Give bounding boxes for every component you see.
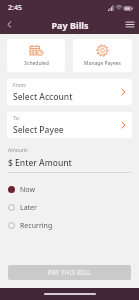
staticText: Recurring (20, 221, 53, 231)
staticText: To: (13, 115, 20, 122)
staticText: $ Enter Amount (8, 157, 72, 169)
staticText: From: (13, 82, 27, 89)
button[interactable]: Amount: (8, 147, 131, 173)
button[interactable]: To: (7, 112, 132, 138)
button[interactable]: Now (8, 184, 131, 195)
staticText: Pay Bills (51, 19, 89, 31)
staticText: Select Payee (13, 124, 64, 136)
button[interactable]: Recurring (8, 220, 131, 231)
staticText: Amount: (8, 147, 29, 154)
button[interactable]: Scheduled (7, 39, 65, 72)
button[interactable]: Menu (120, 15, 139, 34)
staticText: Scheduled (24, 60, 49, 67)
staticText: Manage Payees (84, 60, 121, 67)
staticText: Select Account (13, 91, 73, 103)
staticText: Now (20, 185, 35, 195)
button[interactable]: From: (7, 79, 132, 105)
button[interactable]: Manage Payees (73, 39, 132, 72)
staticText: 2:45 (8, 3, 22, 13)
button[interactable]: Back (0, 15, 19, 34)
button[interactable]: PAY THIS BILL (8, 265, 131, 280)
staticText: Later (20, 203, 37, 213)
button[interactable]: Later (8, 202, 131, 213)
staticText: PAY THIS BILL (48, 268, 91, 277)
